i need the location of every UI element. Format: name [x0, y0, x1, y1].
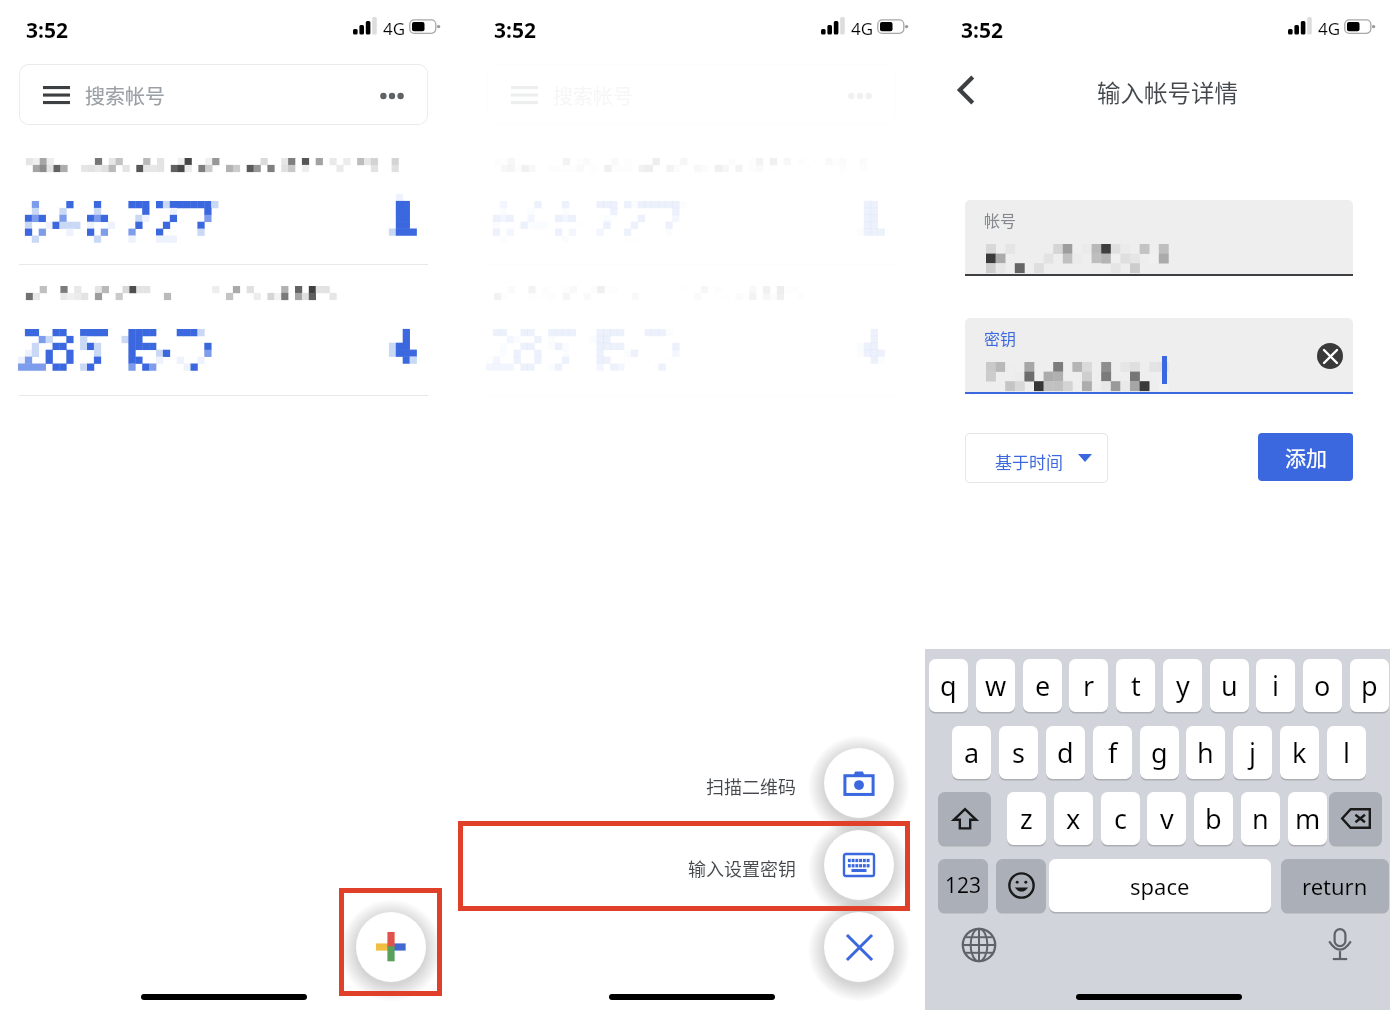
staticText: 3:52 — [494, 16, 536, 45]
button[interactable]: b — [1194, 792, 1233, 845]
staticText: v — [1160, 800, 1174, 837]
button[interactable]: n — [1241, 792, 1280, 845]
staticText: 4G — [1318, 17, 1341, 40]
button[interactable]: Dictation — [1325, 927, 1355, 963]
staticText: 帐号 — [984, 208, 1017, 231]
button[interactable]: Add account — [356, 912, 426, 982]
staticText: 123 — [945, 871, 982, 900]
staticText: 4G — [851, 17, 874, 40]
button[interactable]: 基于时间 — [965, 433, 1108, 483]
button[interactable]: p — [1350, 659, 1389, 712]
button[interactable]: Menu — [43, 86, 70, 104]
staticText: y — [1176, 667, 1190, 704]
button[interactable]: y — [1163, 659, 1202, 712]
staticText: j — [1249, 734, 1256, 771]
staticText: i — [1272, 667, 1279, 704]
other: Shift — [952, 806, 978, 832]
staticText: e — [1035, 667, 1051, 704]
staticText: u — [1221, 667, 1238, 704]
button[interactable]: j — [1233, 726, 1272, 779]
button[interactable]: q — [929, 659, 968, 712]
button[interactable]: Shift — [938, 792, 991, 845]
staticText: r — [1083, 667, 1095, 704]
other: Emoji — [1008, 872, 1035, 899]
staticText: z — [1020, 800, 1033, 837]
staticText: l — [1343, 734, 1350, 771]
button[interactable]: More options — [848, 92, 872, 100]
staticText: k — [1292, 734, 1307, 771]
button[interactable]: Change keyboard — [961, 927, 997, 963]
button[interactable] — [468, 152, 933, 264]
button[interactable]: Backspace — [1329, 792, 1382, 845]
button[interactable]: 输入设置密钥 — [824, 830, 894, 900]
button[interactable]: m — [1288, 792, 1327, 845]
staticText: m — [1295, 800, 1321, 837]
staticText: 添加 — [1285, 442, 1327, 472]
staticText: 输入设置密钥 — [468, 855, 796, 881]
staticText: w — [985, 667, 1007, 704]
staticText: 基于时间 — [995, 449, 1063, 474]
staticText: 3:52 — [961, 16, 1003, 45]
staticText: h — [1197, 734, 1214, 771]
button[interactable]: i — [1256, 659, 1295, 712]
button[interactable]: Close — [824, 912, 894, 982]
button[interactable]: Menu — [511, 86, 538, 104]
button[interactable]: Back — [949, 72, 985, 108]
staticText: p — [1361, 667, 1378, 704]
staticText: n — [1252, 800, 1269, 837]
button[interactable]: Clear text — [1317, 343, 1343, 369]
staticText: q — [940, 667, 957, 704]
button[interactable] — [965, 200, 1353, 276]
button[interactable]: space — [1049, 859, 1271, 912]
staticText: o — [1314, 667, 1331, 704]
staticText: return — [1302, 871, 1368, 901]
other: Backspace — [1341, 808, 1371, 829]
staticText: 输入帐号详情 — [935, 75, 1394, 109]
button[interactable]: o — [1303, 659, 1342, 712]
staticText: c — [1114, 800, 1127, 837]
staticText: s — [1012, 734, 1025, 771]
staticText: space — [1130, 871, 1190, 901]
staticText: 4G — [383, 17, 406, 40]
button[interactable]: d — [1046, 726, 1085, 779]
button[interactable]: e — [1023, 659, 1062, 712]
button[interactable]: s — [999, 726, 1038, 779]
staticText: a — [964, 734, 980, 771]
button[interactable]: z — [1007, 792, 1046, 845]
staticText: x — [1066, 800, 1081, 837]
button[interactable]: c — [1101, 792, 1140, 845]
staticText: b — [1205, 800, 1222, 837]
button[interactable]: 添加 — [1258, 433, 1353, 481]
button[interactable]: t — [1116, 659, 1155, 712]
button[interactable] — [0, 152, 465, 264]
staticText: f — [1108, 734, 1118, 771]
staticText: 密钥 — [984, 326, 1017, 349]
button[interactable]: w — [976, 659, 1015, 712]
staticText: d — [1057, 734, 1074, 771]
button[interactable]: return — [1281, 859, 1389, 912]
staticText: t — [1131, 667, 1141, 704]
button[interactable]: u — [1210, 659, 1249, 712]
staticText: 搜索帐号 — [85, 81, 165, 110]
button[interactable]: l — [1327, 726, 1366, 779]
button[interactable]: Emoji — [996, 859, 1046, 912]
button[interactable]: 扫描二维码 — [824, 748, 894, 818]
button[interactable]: More options — [380, 92, 404, 100]
button[interactable]: f — [1093, 726, 1132, 779]
button[interactable]: h — [1186, 726, 1225, 779]
button[interactable]: g — [1140, 726, 1179, 779]
button[interactable] — [468, 280, 933, 392]
button[interactable]: a — [952, 726, 991, 779]
button[interactable] — [0, 280, 465, 392]
staticText: g — [1151, 734, 1168, 771]
button[interactable]: 123 — [938, 859, 988, 912]
staticText: 3:52 — [26, 16, 68, 45]
button[interactable]: Menu — [19, 64, 428, 125]
button[interactable] — [965, 318, 1353, 394]
button[interactable]: r — [1069, 659, 1108, 712]
button[interactable]: x — [1054, 792, 1093, 845]
button[interactable]: v — [1147, 792, 1186, 845]
staticText: 扫描二维码 — [468, 773, 796, 799]
button[interactable]: k — [1280, 726, 1319, 779]
